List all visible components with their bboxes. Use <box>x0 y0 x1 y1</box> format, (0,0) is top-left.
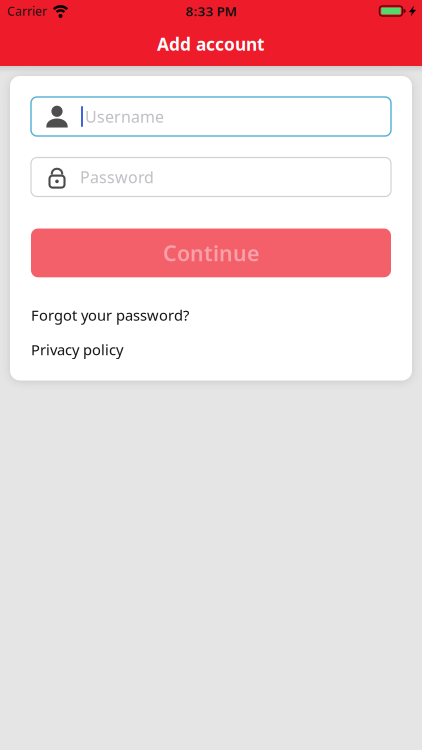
button[interactable]: Privacy policy <box>31 341 123 357</box>
staticText: Continue <box>163 239 259 267</box>
staticText: Carrier <box>7 3 47 19</box>
button[interactable]: Password <box>31 157 391 196</box>
button[interactable]: Continue <box>31 228 391 277</box>
staticText: Username <box>85 106 164 127</box>
staticText: Password <box>80 166 154 188</box>
button[interactable]: Forgot your password? <box>31 307 189 323</box>
staticText: Add account <box>157 32 265 55</box>
button[interactable]: Username <box>31 97 391 136</box>
staticText: Privacy policy <box>31 340 123 359</box>
staticText: Forgot your password? <box>31 305 189 325</box>
staticText: 8:33 PM <box>185 2 236 20</box>
